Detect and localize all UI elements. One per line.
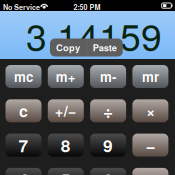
button[interactable]: m- bbox=[90, 65, 126, 88]
staticText: +/− bbox=[55, 100, 77, 121]
button[interactable]: 4 bbox=[5, 168, 41, 175]
staticText: 5 bbox=[61, 167, 71, 175]
button[interactable]: + bbox=[132, 168, 168, 175]
button[interactable]: 8 bbox=[48, 134, 84, 157]
staticText: − bbox=[145, 133, 155, 157]
button[interactable]: Copy bbox=[50, 38, 86, 56]
button[interactable]: Paste bbox=[87, 38, 123, 56]
staticText: Copy bbox=[56, 41, 80, 54]
button[interactable]: 5 bbox=[48, 168, 84, 175]
staticText: 9 bbox=[103, 133, 113, 157]
staticText: mr bbox=[142, 67, 159, 86]
staticText: c bbox=[19, 99, 28, 122]
button[interactable]: 7 bbox=[5, 134, 41, 157]
button[interactable]: × bbox=[132, 99, 168, 122]
staticText: 4 bbox=[18, 167, 28, 175]
staticText: × bbox=[146, 99, 155, 122]
button[interactable]: − bbox=[132, 134, 168, 157]
button[interactable]: mc bbox=[5, 65, 41, 88]
staticText: 2:50 PM bbox=[73, 2, 100, 12]
staticText: 8 bbox=[61, 133, 71, 157]
staticText: 7 bbox=[18, 133, 28, 157]
button[interactable]: m+ bbox=[48, 65, 84, 88]
button[interactable]: 6 bbox=[90, 168, 126, 175]
staticText: 3.14159 bbox=[26, 8, 162, 62]
staticText: + bbox=[145, 167, 155, 175]
staticText: mc bbox=[14, 67, 33, 86]
staticText: m- bbox=[100, 67, 116, 86]
staticText: Paste bbox=[93, 41, 117, 54]
staticText: m+ bbox=[56, 67, 76, 86]
staticText: 6 bbox=[103, 167, 113, 175]
staticText: No Service bbox=[3, 2, 40, 12]
button[interactable]: 9 bbox=[90, 134, 126, 157]
button[interactable]: ÷ bbox=[90, 99, 126, 122]
button[interactable]: +/− bbox=[48, 99, 84, 122]
staticText: ÷ bbox=[103, 98, 113, 123]
button[interactable]: mr bbox=[132, 65, 168, 88]
button[interactable]: c bbox=[5, 99, 41, 122]
